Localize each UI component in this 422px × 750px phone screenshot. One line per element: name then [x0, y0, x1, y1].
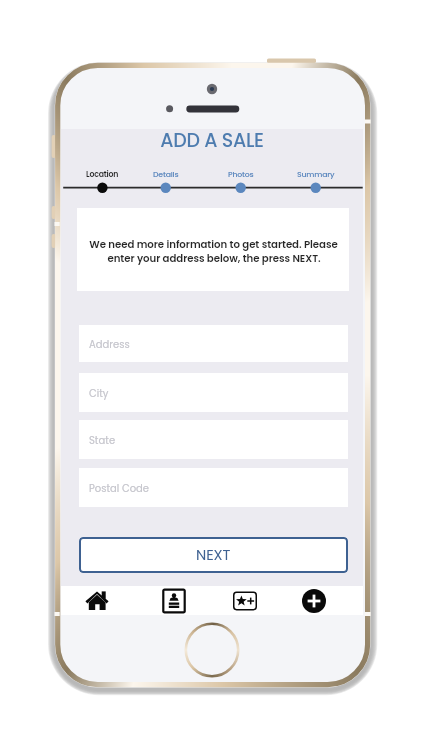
staticText: Photos: [228, 169, 254, 180]
staticText: NEXT: [196, 545, 231, 565]
button[interactable]: Address: [79, 325, 348, 362]
staticText: We need more information to get started.…: [89, 237, 338, 251]
button[interactable]: Contacts: [152, 586, 196, 615]
staticText: Postal Code: [89, 481, 150, 495]
button[interactable]: Location: [62, 169, 142, 183]
staticText: State: [89, 433, 116, 447]
button[interactable]: City: [79, 373, 348, 412]
button[interactable]: NEXT: [79, 537, 348, 573]
button[interactable]: Photos: [201, 169, 281, 183]
staticText: enter your address below, the press NEXT…: [107, 251, 321, 265]
button[interactable]: Add: [292, 586, 336, 615]
button[interactable]: Favorites: [223, 586, 267, 615]
staticText: Location: [86, 169, 119, 180]
button[interactable]: Postal Code: [79, 468, 348, 507]
staticText: Summary: [297, 169, 335, 180]
staticText: Details: [153, 169, 179, 180]
button[interactable]: State: [79, 420, 348, 459]
button[interactable]: Summary: [276, 169, 356, 183]
staticText: ADD A SALE: [160, 127, 264, 153]
button[interactable]: Home: [75, 586, 119, 615]
staticText: Address: [89, 337, 130, 351]
button[interactable]: Details: [126, 169, 206, 183]
staticText: City: [89, 386, 109, 400]
